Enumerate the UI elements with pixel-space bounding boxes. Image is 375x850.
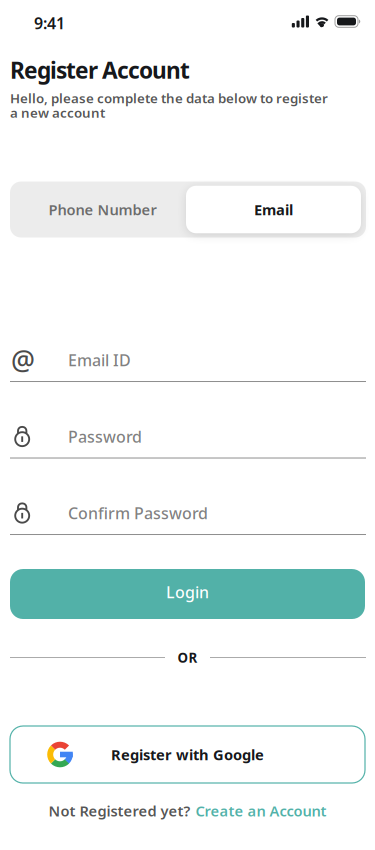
button[interactable]: Phone Number (10, 181, 188, 237)
staticText: Email (254, 200, 293, 219)
button[interactable]: Register with Google (10, 726, 365, 783)
staticText: Register Account (10, 55, 190, 85)
staticText: Email ID (68, 349, 131, 371)
staticText: Register with Google (111, 745, 264, 764)
staticText: @ (11, 342, 35, 378)
staticText: Password (68, 426, 142, 447)
button[interactable]: Email (188, 181, 366, 237)
staticText: Confirm Password (68, 502, 208, 524)
button[interactable]: Confirm Password (0, 492, 375, 535)
button[interactable]: Create an Account (195, 801, 326, 820)
staticText: Create an Account (195, 801, 326, 820)
button[interactable]: @ (0, 339, 375, 382)
staticText: OR (177, 649, 197, 666)
staticText: Hello, please complete the data below to… (10, 89, 328, 121)
button[interactable]: Login (10, 569, 365, 619)
staticText: 9:41 (34, 12, 65, 34)
staticText: Phone Number (48, 200, 156, 219)
staticText: Login (166, 581, 209, 603)
staticText: Not Registered yet? (48, 801, 190, 820)
button[interactable]: Password (0, 415, 375, 458)
